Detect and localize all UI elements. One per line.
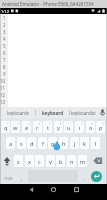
staticText: 2 xyxy=(3,22,6,28)
staticText: m xyxy=(80,158,86,165)
staticText: 8 xyxy=(81,122,83,126)
button[interactable]: m xyxy=(78,155,87,167)
staticText: keyboard xyxy=(42,110,64,116)
button[interactable]: y xyxy=(54,121,63,133)
staticText: 3 xyxy=(3,29,6,35)
staticText: l xyxy=(95,140,97,147)
staticText: f xyxy=(42,140,44,147)
button[interactable] xyxy=(27,185,36,194)
staticText: z xyxy=(17,158,20,165)
button[interactable]: n xyxy=(67,155,76,167)
button[interactable]: ?123 xyxy=(1,172,16,184)
staticText: 10 xyxy=(0,78,6,84)
button[interactable]: 14 xyxy=(0,106,8,107)
staticText: 4 xyxy=(38,122,40,126)
staticText: 5 xyxy=(49,122,51,126)
staticText: k xyxy=(83,140,86,147)
button[interactable]: o xyxy=(86,121,95,133)
button[interactable]: 9 xyxy=(0,71,8,78)
button[interactable]: , xyxy=(17,172,26,184)
staticText: 0 xyxy=(102,122,104,126)
staticText: 3 xyxy=(28,122,30,126)
button[interactable]: 8 xyxy=(0,64,8,71)
button[interactable]: d xyxy=(27,137,36,149)
button[interactable]: j xyxy=(70,137,79,149)
staticText: b xyxy=(59,158,63,165)
staticText: s xyxy=(20,140,23,147)
staticText: Android Emulator - Phone:5566_6A4261554 xyxy=(2,1,94,7)
button[interactable]: v xyxy=(46,155,55,167)
button[interactable]: 7 xyxy=(0,57,8,64)
button[interactable]: q xyxy=(1,121,10,133)
staticText: 9 xyxy=(91,122,93,126)
button[interactable]: 10 xyxy=(0,78,8,85)
button[interactable]: h xyxy=(59,137,68,149)
button[interactable] xyxy=(1,155,13,167)
button[interactable]: 12 xyxy=(0,92,8,99)
staticText: o xyxy=(89,124,93,131)
button[interactable]: 1 xyxy=(0,15,8,22)
button[interactable]: w xyxy=(11,121,20,133)
button[interactable]: g xyxy=(48,137,57,149)
button[interactable]: a xyxy=(6,137,15,149)
button[interactable]: b xyxy=(56,155,65,167)
staticText: r xyxy=(36,124,39,131)
button[interactable]: e xyxy=(22,121,31,133)
staticText: 4 xyxy=(3,36,6,42)
staticText: 6 xyxy=(60,122,62,126)
button[interactable]: keyboard xyxy=(36,107,69,118)
button[interactable]: 6 xyxy=(0,50,8,57)
staticText: v xyxy=(49,158,52,165)
button[interactable]: l xyxy=(91,137,100,149)
button[interactable]: keyboardist xyxy=(69,107,98,118)
staticText: a xyxy=(9,140,13,147)
staticText: 12 xyxy=(0,92,6,98)
button[interactable]: c xyxy=(35,155,44,167)
button[interactable]: x xyxy=(25,155,34,167)
staticText: 13 xyxy=(0,99,6,105)
staticText: 7 xyxy=(3,57,6,63)
staticText: q xyxy=(4,124,8,131)
staticText: t xyxy=(47,124,49,131)
staticText: 14 xyxy=(0,106,6,107)
button[interactable]: u xyxy=(64,121,73,133)
staticText: 1 xyxy=(3,15,6,21)
button[interactable]: 3 xyxy=(0,29,8,36)
button[interactable]: 5 xyxy=(0,43,8,50)
staticText: 1:12 xyxy=(1,9,9,14)
staticText: i xyxy=(79,124,81,131)
button[interactable] xyxy=(91,171,102,182)
button[interactable]: 13 xyxy=(0,99,8,106)
staticText: keyboards xyxy=(7,110,29,116)
button[interactable]: f xyxy=(38,137,47,149)
button[interactable] xyxy=(88,155,106,167)
button[interactable] xyxy=(49,185,58,194)
button[interactable]: t xyxy=(43,121,52,133)
staticText: 2 xyxy=(17,122,19,126)
button[interactable]: 11 xyxy=(0,85,8,92)
button[interactable]: 2 xyxy=(0,22,8,29)
button[interactable]: i xyxy=(75,121,84,133)
staticText: 11 xyxy=(0,85,6,91)
staticText: keyboardist xyxy=(71,110,96,116)
button[interactable]: k xyxy=(80,137,89,149)
staticText: x xyxy=(28,158,31,165)
staticText: ?123 xyxy=(4,176,13,181)
staticText: 9 xyxy=(3,71,6,77)
button[interactable]: 4 xyxy=(0,36,8,43)
button[interactable]: z xyxy=(14,155,23,167)
staticText: n xyxy=(70,158,74,165)
staticText: 8 xyxy=(3,64,6,70)
button[interactable]: p xyxy=(96,121,105,133)
staticText: e xyxy=(25,124,29,131)
button[interactable]: keyboards xyxy=(0,107,36,118)
staticText: 5 xyxy=(3,43,6,49)
button[interactable] xyxy=(72,185,81,194)
staticText: 6 xyxy=(3,50,6,56)
button[interactable]: . xyxy=(79,172,88,184)
button[interactable]: s xyxy=(17,137,26,149)
button[interactable]: r xyxy=(33,121,42,133)
staticText: . xyxy=(83,175,85,182)
staticText: p xyxy=(99,124,103,131)
